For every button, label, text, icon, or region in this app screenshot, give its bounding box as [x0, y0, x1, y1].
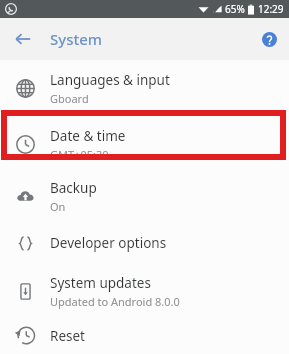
button[interactable]: System updates [0, 265, 289, 317]
button[interactable]: Backup [0, 171, 289, 221]
staticText: 12:29 [258, 2, 284, 16]
staticText: System [50, 29, 103, 49]
staticText: Languages & input [50, 71, 170, 89]
staticText: On [50, 199, 66, 214]
staticText: Updated to Android 8.0.0 [50, 294, 180, 309]
staticText: Reset [50, 327, 85, 345]
button[interactable]: Reset [0, 317, 289, 354]
staticText: Date & time [50, 127, 126, 145]
button[interactable]: Back [8, 24, 38, 54]
staticText: System updates [50, 274, 151, 292]
staticText: Gboard [50, 91, 89, 106]
staticText: Developer options [50, 234, 167, 252]
button[interactable]: Developer options [0, 221, 289, 265]
staticText: Backup [50, 179, 97, 197]
staticText: GMT+05:30 [50, 147, 109, 162]
button[interactable]: Help [256, 26, 282, 52]
staticText: 65% [225, 2, 245, 16]
button[interactable]: Languages & input [0, 60, 289, 117]
button[interactable]: Date & time [0, 117, 289, 171]
